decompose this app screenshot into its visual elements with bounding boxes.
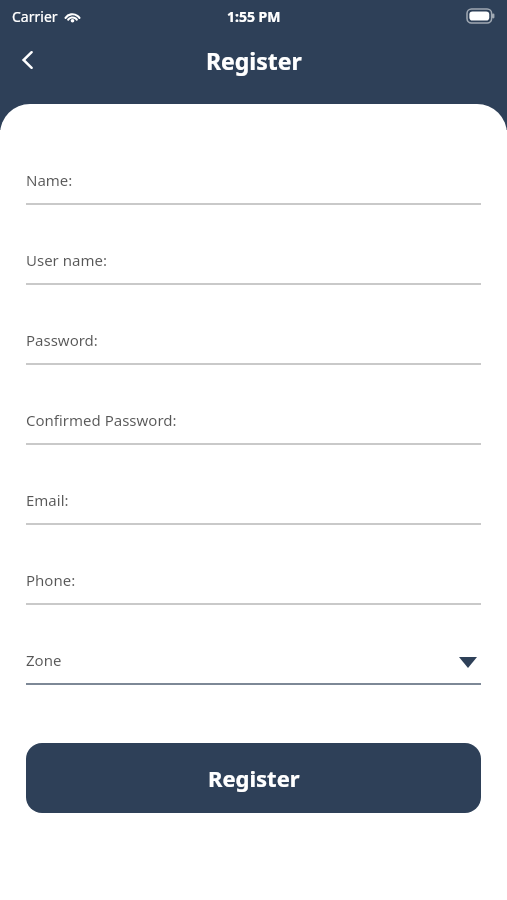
staticText: Confirmed Password: — [26, 410, 177, 430]
staticText: Name: — [26, 170, 73, 190]
staticText: User name: — [26, 250, 107, 270]
staticText: Phone: — [26, 570, 76, 590]
button[interactable]: Zone dropdown — [0, 640, 507, 720]
button[interactable]: Name: — [0, 160, 507, 240]
button[interactable]: Phone: — [0, 560, 507, 640]
staticText: Password: — [26, 330, 98, 350]
staticText: Register — [208, 763, 300, 793]
button[interactable]: User name: — [0, 240, 507, 320]
button[interactable]: Back — [6, 38, 50, 82]
staticText: Register — [206, 45, 302, 76]
button[interactable]: Email: — [0, 480, 507, 560]
staticText: Email: — [26, 490, 69, 510]
staticText: Carrier — [12, 7, 58, 26]
staticText: 1:55 PM — [227, 7, 281, 26]
button[interactable]: Password: — [0, 320, 507, 400]
button[interactable]: Confirmed Password: — [0, 400, 507, 480]
staticText: Zone — [26, 650, 62, 670]
button[interactable]: Register — [26, 743, 481, 813]
